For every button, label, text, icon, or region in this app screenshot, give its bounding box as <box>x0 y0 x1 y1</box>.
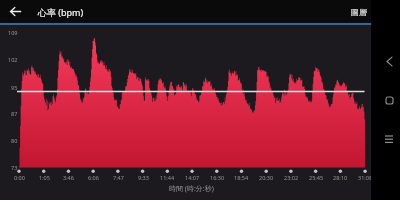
staticText: 時間 (時:分:秒) <box>169 184 214 194</box>
button[interactable]: Recent apps <box>375 125 400 153</box>
staticText: 95 <box>11 84 18 91</box>
staticText: 7:47 <box>113 174 124 181</box>
staticText: 102 <box>8 56 18 63</box>
staticText: 73 <box>11 164 18 171</box>
staticText: 18:54 <box>234 174 249 181</box>
staticText: 16:30 <box>210 174 225 181</box>
staticText: 0:00 <box>14 174 25 181</box>
staticText: 圖層 <box>351 7 367 17</box>
button[interactable]: 圖層 <box>344 3 371 21</box>
staticText: 20:30 <box>259 174 274 181</box>
staticText: 87 <box>11 110 18 117</box>
staticText: 14:07 <box>185 174 200 181</box>
button[interactable]: Home <box>375 86 400 114</box>
staticText: 9:33 <box>138 174 149 181</box>
staticText: 28:10 <box>333 174 348 181</box>
staticText: 11:44 <box>160 174 175 181</box>
staticText: 31:08 <box>358 174 373 181</box>
button[interactable]: Back <box>375 47 400 75</box>
staticText: 109 <box>8 29 18 36</box>
staticText: 1:05 <box>39 174 50 181</box>
staticText: 6:06 <box>88 174 99 181</box>
staticText: 80 <box>11 137 18 144</box>
staticText: 3:46 <box>63 174 74 181</box>
staticText: 23:02 <box>284 174 299 181</box>
staticText: 心率 (bpm) <box>38 6 84 18</box>
staticText: 25:45 <box>309 174 324 181</box>
button[interactable]: Back <box>3 0 27 23</box>
